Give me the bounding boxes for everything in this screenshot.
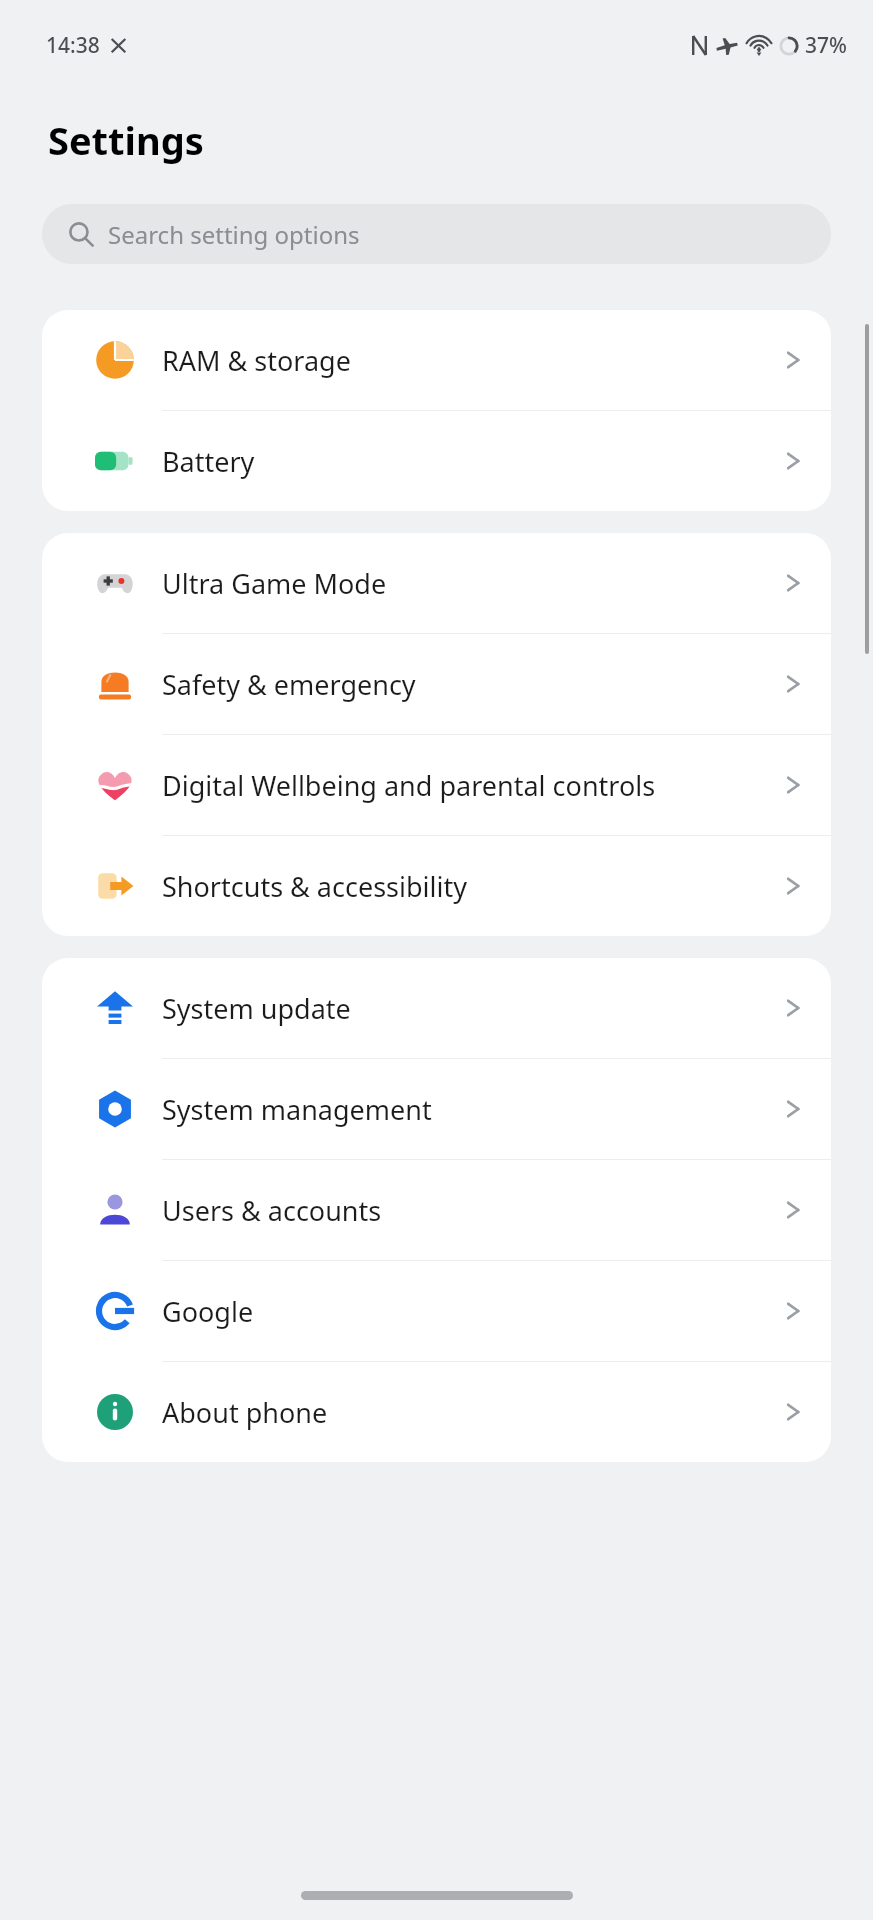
button[interactable]: System update [42, 958, 831, 1058]
staticText: System management [162, 1091, 765, 1128]
button[interactable]: Digital Wellbeing and parental controls [42, 735, 831, 835]
staticText: Google [162, 1293, 765, 1330]
other: Open About phone [781, 1400, 805, 1424]
other: Open Battery [781, 449, 805, 473]
other: Open Users & accounts [781, 1198, 805, 1222]
staticText: 14:38 [46, 31, 100, 60]
staticText: RAM & storage [162, 342, 765, 379]
staticText: Users & accounts [162, 1192, 765, 1229]
other: Open RAM & storage [781, 348, 805, 372]
button[interactable]: Google [42, 1261, 831, 1361]
button[interactable]: About phone [42, 1362, 831, 1462]
staticText: Safety & emergency [162, 666, 765, 703]
button[interactable]: Shortcuts & accessibility [42, 836, 831, 936]
other: Open System management [781, 1097, 805, 1121]
other: Open Digital Wellbeing and parental cont… [781, 773, 805, 797]
button[interactable]: Users & accounts [42, 1160, 831, 1260]
other: Open Shortcuts & accessibility [781, 874, 805, 898]
button[interactable]: Safety & emergency [42, 634, 831, 734]
staticText: Settings [48, 114, 204, 166]
button[interactable]: Battery [42, 411, 831, 511]
staticText: About phone [162, 1394, 765, 1431]
button[interactable]: RAM & storage [42, 310, 831, 410]
staticText: Shortcuts & accessibility [162, 868, 765, 905]
staticText: Ultra Game Mode [162, 565, 765, 602]
other: Open Ultra Game Mode [781, 571, 805, 595]
other: Open Safety & emergency [781, 672, 805, 696]
button[interactable]: System management [42, 1059, 831, 1159]
staticText: Battery [162, 443, 765, 480]
button[interactable]: Search setting options [42, 204, 831, 264]
staticText: Search setting options [108, 218, 360, 251]
staticText: Digital Wellbeing and parental controls [162, 767, 765, 804]
other: Open Google [781, 1299, 805, 1323]
button[interactable]: Ultra Game Mode [42, 533, 831, 633]
staticText: 37% [805, 31, 847, 60]
other: Open System update [781, 996, 805, 1020]
staticText: System update [162, 990, 765, 1027]
